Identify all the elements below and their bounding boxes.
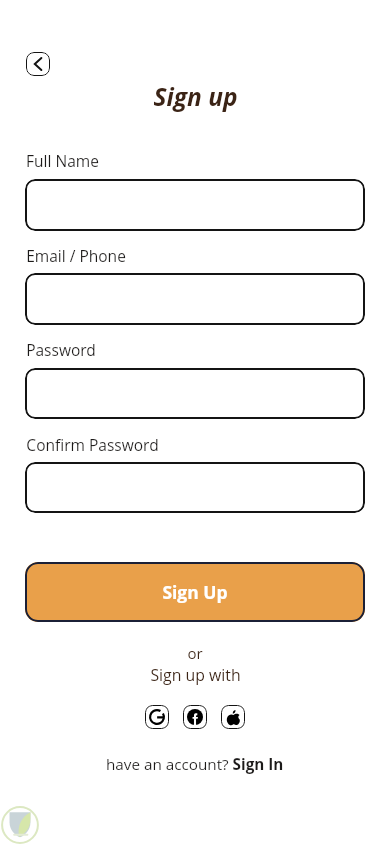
button[interactable] <box>25 179 365 231</box>
button[interactable] <box>25 273 365 325</box>
button[interactable]: Sign up with Google <box>145 705 169 729</box>
button[interactable]: Sign up with Facebook <box>183 705 207 729</box>
button[interactable] <box>25 368 365 419</box>
staticText: Email / Phone <box>26 245 126 266</box>
staticText: or <box>187 643 203 663</box>
staticText: Password <box>26 339 96 360</box>
button[interactable] <box>25 462 365 513</box>
button[interactable]: Back <box>26 52 50 76</box>
staticText: Sign up with <box>150 664 241 686</box>
staticText: Sign Up <box>162 580 228 604</box>
staticText: Sign up <box>153 80 238 113</box>
button[interactable]: Sign Up <box>25 562 365 622</box>
button[interactable]: have an account? Sign In <box>106 754 284 775</box>
button[interactable]: Sign up with Apple <box>221 705 245 729</box>
staticText: Full Name <box>26 150 99 171</box>
staticText: Confirm Password <box>26 434 159 455</box>
